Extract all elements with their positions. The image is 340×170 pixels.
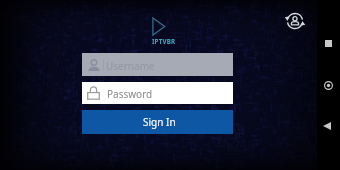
button[interactable]: Recents (319, 34, 337, 52)
staticText: Password (107, 87, 153, 101)
staticText: Sign In (143, 115, 176, 129)
button[interactable]: Back (318, 117, 336, 135)
button[interactable]: Home (319, 76, 337, 94)
button[interactable]: Username (82, 53, 233, 76)
staticText: Username (106, 59, 155, 73)
button[interactable]: Switch account (282, 8, 308, 33)
button[interactable]: Password (82, 82, 233, 104)
button[interactable]: Sign In (82, 110, 233, 134)
staticText: IPTVBR (152, 37, 176, 45)
